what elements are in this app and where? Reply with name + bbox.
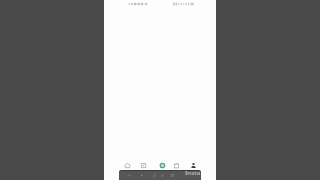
button[interactable]: Recents — [170, 173, 175, 178]
button[interactable]: Pause — [160, 173, 165, 178]
staticText: Insta — [185, 169, 201, 177]
button[interactable]: Home — [124, 162, 131, 169]
button[interactable]: Create — [159, 162, 166, 169]
button[interactable]: Profile — [190, 162, 197, 169]
button[interactable]: Play — [139, 173, 144, 178]
button[interactable]: Back — [127, 173, 132, 178]
button[interactable]: Reels — [140, 162, 147, 169]
button[interactable]: Home — [152, 173, 157, 178]
button[interactable]: Shop — [173, 162, 180, 169]
